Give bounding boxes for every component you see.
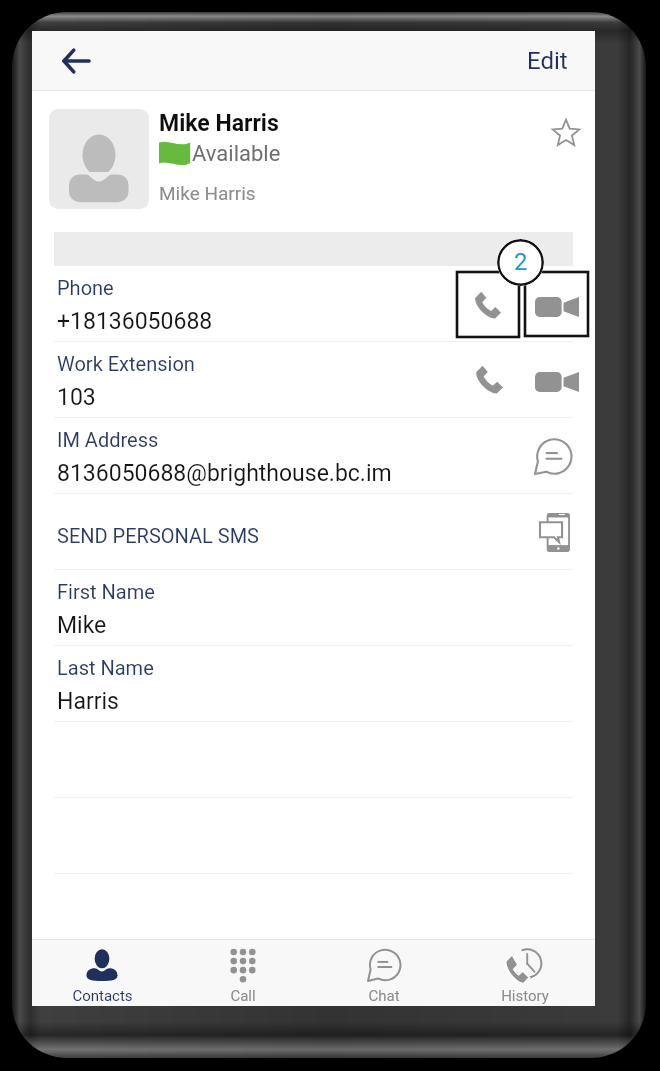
button[interactable]: Back [51,36,101,86]
staticText: 8136050688@brighthouse.bc.im [57,460,392,487]
button[interactable]: Add to favorites [545,112,587,154]
staticText: Phone [57,276,114,299]
button[interactable]: Edit [519,41,576,81]
staticText: IM Address [57,428,159,451]
staticText: Call [230,987,256,1005]
staticText: First Name [57,580,155,603]
button[interactable]: Call [172,939,313,1006]
staticText: Contacts [72,987,133,1005]
staticText: Mike Harris [159,110,279,137]
staticText: Mike Harris [159,182,256,204]
button[interactable]: Call [458,346,520,412]
staticText: Harris [57,688,119,715]
button[interactable]: Video call [525,272,588,336]
button[interactable]: Chat [525,429,580,484]
button[interactable]: Chat [313,939,454,1006]
staticText: Available [192,141,281,167]
button[interactable]: IM Address [32,418,595,494]
button[interactable]: Video call [523,346,588,412]
button[interactable]: SEND PERSONAL SMS [32,494,595,570]
button[interactable]: Call [457,272,519,337]
staticText: Chat [368,987,400,1005]
staticText: 2 [514,248,528,276]
staticText: +18136050688 [57,308,213,335]
button[interactable]: Work Extension [32,342,595,418]
button[interactable]: Contacts [32,939,172,1006]
staticText: Edit [527,47,568,75]
button[interactable]: Phone [32,266,595,342]
staticText: SEND PERSONAL SMS [57,524,259,547]
staticText: Mike [57,612,107,639]
staticText: History [501,987,549,1005]
button[interactable]: History [454,939,595,1006]
button[interactable]: First Name [32,570,595,646]
staticText: Last Name [57,656,154,679]
staticText: 103 [57,384,96,411]
button[interactable]: Last Name [32,646,595,722]
staticText: Work Extension [57,352,195,375]
other: Send SMS [529,506,581,558]
